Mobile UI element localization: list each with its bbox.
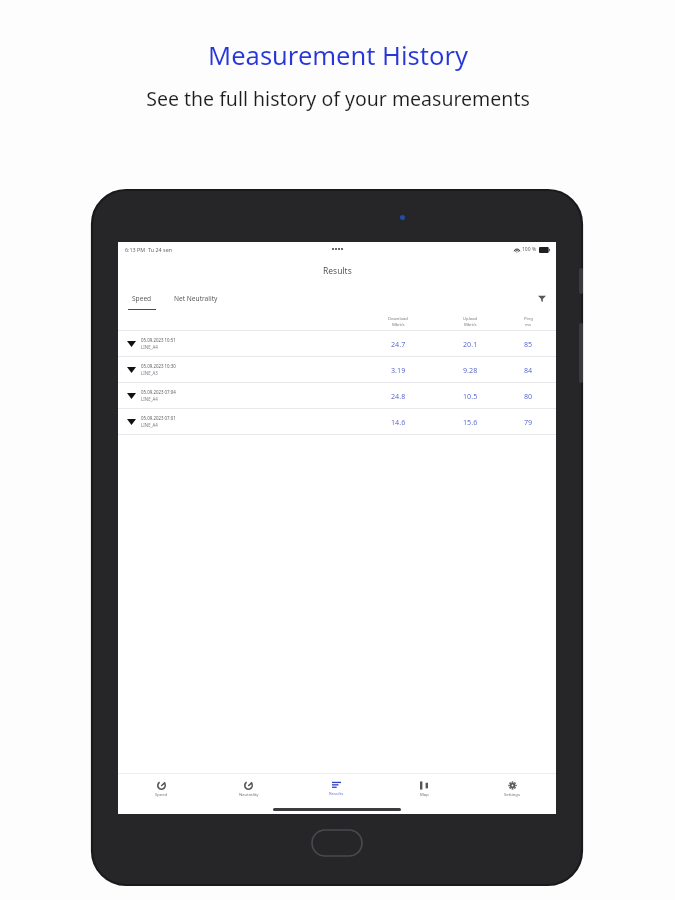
staticText: Speed: [132, 294, 152, 303]
staticText: 6:13 PM Tu 24 sen: [125, 246, 173, 253]
staticText: Upload: [463, 316, 478, 322]
button[interactable]: 05.09.2023 07:04: [118, 383, 556, 408]
staticText: 24.7: [391, 339, 406, 349]
staticText: 05.09.2023 10:30: [141, 363, 176, 369]
staticText: Neutrality: [239, 792, 259, 798]
button[interactable]: Map: [380, 774, 468, 804]
staticText: LINE_A4: [141, 396, 158, 402]
staticText: Download: [388, 316, 408, 322]
staticText: LINE_A4: [141, 344, 158, 350]
staticText: ms: [525, 322, 531, 328]
staticText: Speed: [155, 792, 168, 798]
button[interactable]: Net Neutrality: [170, 291, 222, 306]
staticText: 80: [524, 391, 533, 401]
button[interactable]: Speed: [128, 291, 156, 306]
staticText: Measurement History: [208, 38, 468, 73]
button[interactable]: 05.09.2023 07:01: [118, 409, 556, 434]
button[interactable]: Speed: [118, 774, 205, 804]
staticText: Results: [329, 791, 344, 797]
staticText: 05.09.2023 10:51: [141, 337, 176, 343]
staticText: 20.1: [463, 339, 478, 349]
staticText: 10.5: [463, 391, 478, 401]
staticText: Net Neutrality: [174, 294, 218, 303]
staticText: LINE_A4: [141, 422, 158, 428]
staticText: See the full history of your measurement…: [146, 85, 530, 112]
staticText: Ping: [524, 316, 533, 322]
staticText: Settings: [504, 792, 520, 798]
staticText: LINE_A3: [141, 370, 158, 376]
staticText: 79: [524, 417, 533, 427]
staticText: 100 %: [522, 246, 537, 253]
staticText: 3.19: [391, 365, 406, 375]
button[interactable]: Settings: [468, 774, 556, 804]
staticText: 9.28: [463, 365, 478, 375]
staticText: 05.09.2023 07:01: [141, 415, 176, 421]
staticText: Map: [420, 792, 429, 798]
staticText: Mbit/s: [392, 322, 405, 328]
staticText: 14.6: [391, 417, 406, 427]
button[interactable]: Neutrality: [205, 774, 292, 804]
staticText: Results: [323, 265, 352, 277]
staticText: 24.8: [391, 391, 406, 401]
button[interactable]: Results: [292, 774, 380, 804]
button[interactable]: 05.09.2023 10:30: [118, 357, 556, 382]
staticText: 05.09.2023 07:04: [141, 389, 176, 395]
staticText: Mbit/s: [464, 322, 477, 328]
button[interactable]: 05.09.2023 10:51: [118, 331, 556, 356]
button[interactable]: Filter: [536, 292, 548, 304]
staticText: 15.6: [463, 417, 478, 427]
staticText: 85: [524, 339, 533, 349]
staticText: 84: [524, 365, 533, 375]
